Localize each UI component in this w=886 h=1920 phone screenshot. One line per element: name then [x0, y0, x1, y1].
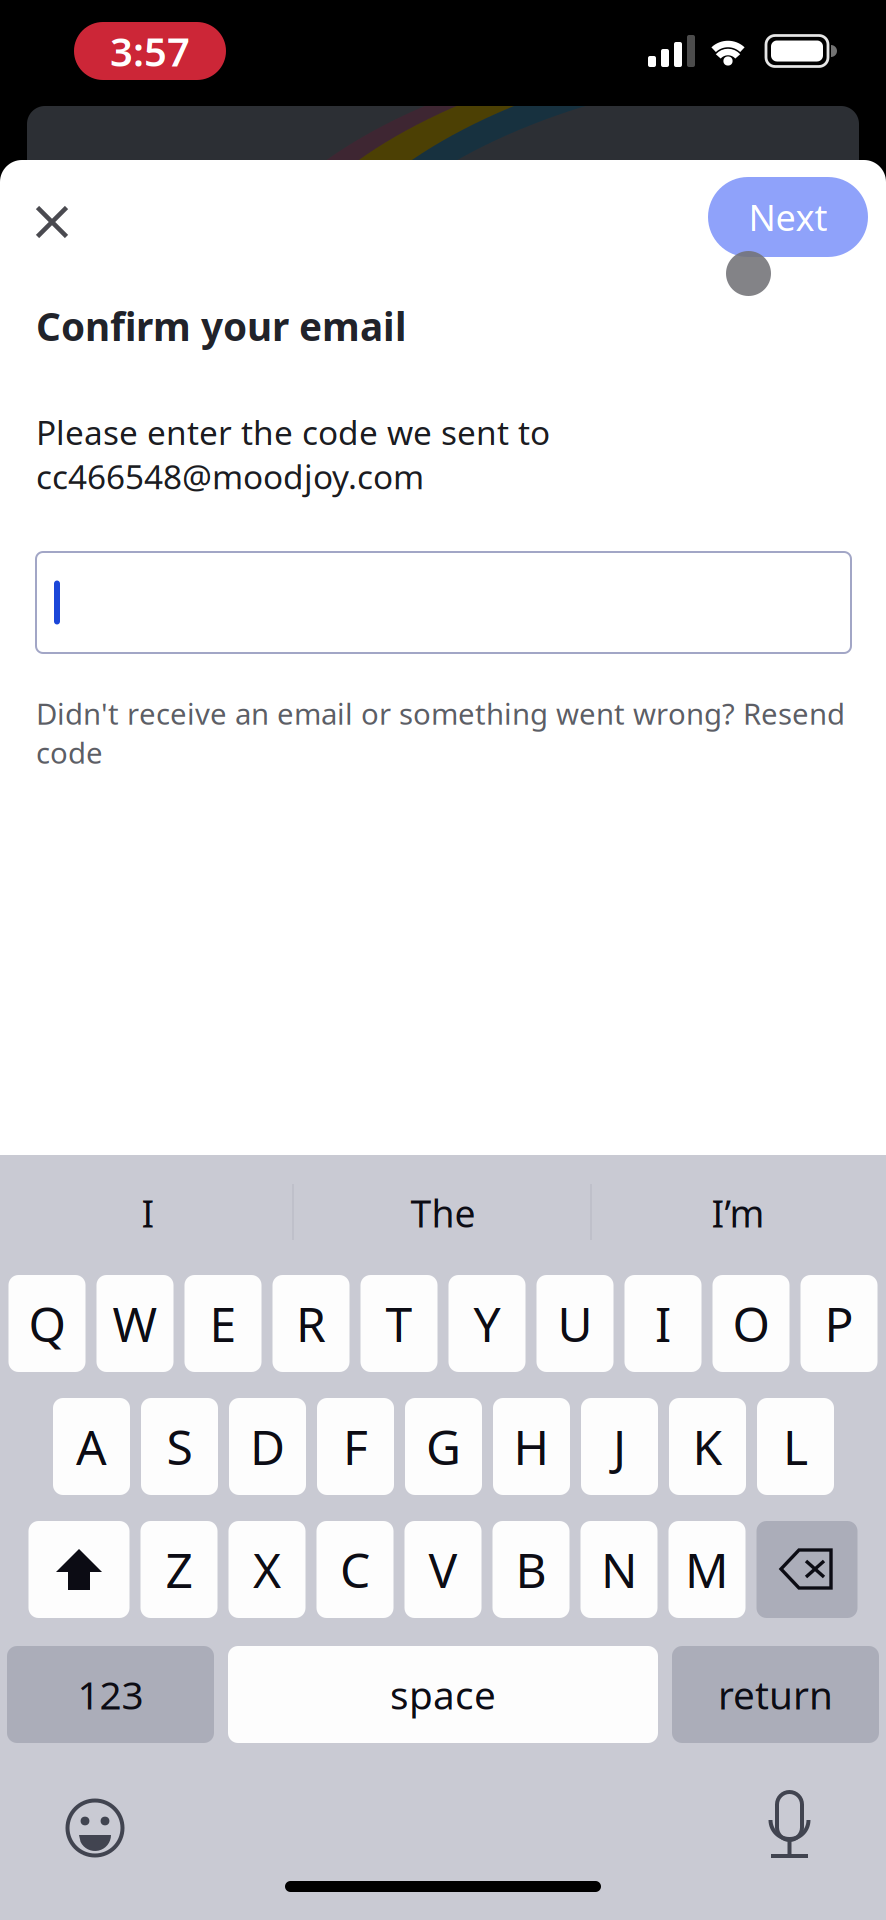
button[interactable]: Didn't receive an email or something wen…	[36, 694, 860, 784]
staticText: K	[692, 1415, 722, 1478]
button[interactable]: I’m	[590, 1165, 885, 1261]
button[interactable]: I	[624, 1275, 701, 1372]
staticText: O	[732, 1292, 769, 1355]
staticText: U	[557, 1292, 592, 1355]
staticText: G	[426, 1415, 461, 1478]
button[interactable]: K	[669, 1398, 746, 1495]
staticText: R	[296, 1292, 326, 1355]
button[interactable]: X	[228, 1521, 305, 1618]
staticText: space	[390, 1669, 496, 1720]
staticText: T	[385, 1292, 412, 1355]
staticText: Z	[165, 1538, 192, 1601]
button[interactable]: Y	[448, 1275, 525, 1372]
button[interactable]: O	[712, 1275, 789, 1372]
button[interactable]: H	[493, 1398, 570, 1495]
staticText: I	[655, 1292, 671, 1355]
staticText: W	[112, 1292, 157, 1355]
staticText: J	[613, 1415, 626, 1478]
staticText: I	[141, 1188, 154, 1238]
button[interactable]: Q	[8, 1275, 85, 1372]
button[interactable]: G	[405, 1398, 482, 1495]
staticText: return	[718, 1669, 833, 1720]
staticText: Y	[473, 1292, 500, 1355]
staticText: C	[340, 1538, 370, 1601]
staticText: L	[783, 1415, 808, 1478]
button[interactable]: Dictate	[766, 1792, 813, 1860]
staticText: B	[515, 1538, 546, 1601]
button[interactable]: S	[141, 1398, 218, 1495]
button[interactable]: return	[672, 1646, 879, 1743]
staticText: 123	[77, 1669, 143, 1720]
staticText: Q	[28, 1292, 65, 1355]
button[interactable]: V	[404, 1521, 481, 1618]
button[interactable]: C	[316, 1521, 393, 1618]
button[interactable]: D	[229, 1398, 306, 1495]
button[interactable]: Close	[14, 184, 90, 260]
button[interactable]: L	[757, 1398, 834, 1495]
button[interactable]: Next	[708, 177, 868, 257]
staticText: P	[824, 1292, 853, 1355]
staticText: Next	[748, 193, 827, 241]
staticText: V	[428, 1538, 457, 1601]
staticText: E	[209, 1292, 236, 1355]
button[interactable]: Shift	[28, 1521, 129, 1618]
button[interactable]: space	[228, 1646, 658, 1743]
button[interactable]: Delete	[756, 1521, 857, 1618]
button[interactable]: W	[96, 1275, 173, 1372]
button[interactable]: E	[184, 1275, 261, 1372]
button[interactable]: U	[536, 1275, 613, 1372]
staticText: A	[76, 1415, 107, 1478]
staticText: F	[343, 1415, 368, 1478]
button[interactable]: M	[668, 1521, 745, 1618]
staticText: 3:57	[110, 24, 190, 77]
staticText: H	[513, 1415, 549, 1478]
staticText: The	[410, 1188, 475, 1238]
button[interactable]: 123	[7, 1646, 214, 1743]
button[interactable]: Emoji keyboard	[65, 1798, 125, 1858]
staticText: S	[166, 1415, 192, 1478]
button[interactable]: J	[581, 1398, 658, 1495]
button[interactable]: P	[800, 1275, 877, 1372]
staticText: Please enter the code we sent to cc46654…	[36, 410, 550, 498]
button[interactable]: I	[0, 1165, 295, 1261]
button[interactable]: R	[272, 1275, 349, 1372]
button[interactable]: B	[492, 1521, 569, 1618]
staticText: N	[601, 1538, 637, 1601]
button[interactable]: A	[53, 1398, 130, 1495]
staticText: M	[685, 1538, 729, 1601]
staticText: D	[250, 1415, 285, 1478]
button[interactable]: F	[317, 1398, 394, 1495]
staticText: X	[253, 1538, 281, 1601]
staticText: Didn't receive an email or something wen…	[36, 694, 845, 772]
button[interactable]: The	[295, 1165, 590, 1261]
staticText: I’m	[711, 1188, 764, 1238]
button[interactable]: Z	[140, 1521, 217, 1618]
staticText: Confirm your email	[36, 300, 407, 352]
button[interactable]: T	[360, 1275, 437, 1372]
button[interactable]: N	[580, 1521, 657, 1618]
